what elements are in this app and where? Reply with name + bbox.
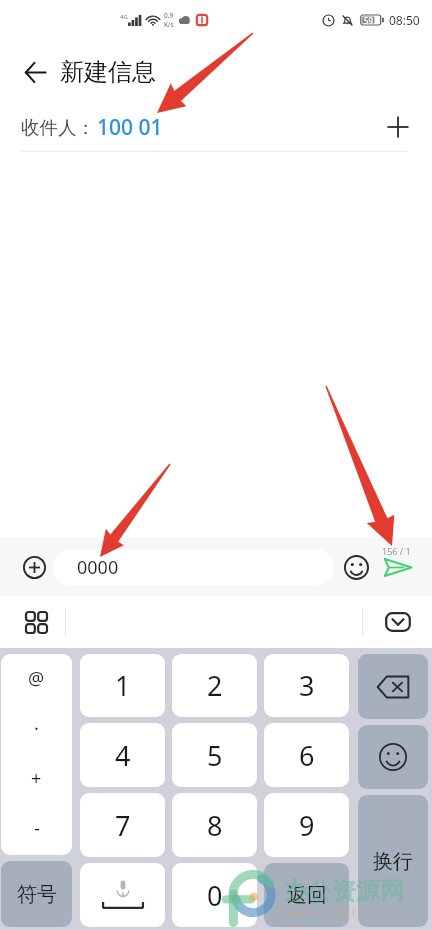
staticText: 2 bbox=[207, 667, 223, 704]
staticText: 6 bbox=[299, 737, 315, 774]
button[interactable]: Emoji keyboard bbox=[358, 725, 428, 789]
staticText: 4G bbox=[120, 13, 128, 21]
button[interactable]: Add recipient bbox=[378, 107, 418, 147]
staticText: 0000 bbox=[77, 555, 119, 580]
staticText: 换行 bbox=[373, 849, 413, 874]
staticText: K/s bbox=[164, 20, 174, 29]
button[interactable]: 3 bbox=[264, 654, 349, 717]
staticText: - bbox=[34, 816, 40, 841]
staticText: 8 bbox=[207, 807, 223, 844]
staticText: 9 bbox=[299, 807, 315, 844]
button[interactable]: Space bbox=[80, 863, 165, 927]
staticText: 4 bbox=[115, 737, 131, 774]
button[interactable]: Send bbox=[377, 546, 419, 588]
button[interactable]: 9 bbox=[264, 793, 349, 857]
staticText: 新建信息 bbox=[60, 57, 156, 87]
staticText: 符号 bbox=[17, 882, 57, 907]
staticText: 0.9 bbox=[164, 11, 174, 20]
button[interactable]: @ bbox=[1, 654, 72, 855]
button[interactable]: 1 bbox=[80, 654, 165, 717]
staticText: 156 / 1 bbox=[382, 545, 411, 557]
button[interactable]: 7 bbox=[80, 793, 165, 857]
staticText: + bbox=[31, 766, 42, 791]
button[interactable]: 0 bbox=[172, 863, 257, 927]
button[interactable]: 4 bbox=[80, 723, 165, 787]
button[interactable]: Emoji bbox=[336, 547, 376, 587]
button[interactable]: Add attachment bbox=[13, 546, 56, 589]
staticText: · bbox=[34, 716, 39, 741]
button[interactable]: Keyboard options bbox=[18, 604, 54, 640]
staticText: 59 bbox=[364, 15, 374, 26]
button[interactable]: Hide keyboard bbox=[380, 604, 416, 640]
button[interactable]: Backspace bbox=[358, 654, 428, 719]
staticText: 08:50 bbox=[389, 12, 420, 28]
button[interactable]: 返回 bbox=[264, 863, 349, 927]
button[interactable]: 换行 bbox=[358, 795, 428, 927]
staticText: 7 bbox=[115, 807, 131, 844]
staticText: @ bbox=[28, 666, 45, 691]
staticText: 3 bbox=[299, 667, 315, 704]
button[interactable]: 2 bbox=[172, 654, 257, 717]
button[interactable]: 6 bbox=[264, 723, 349, 787]
button[interactable]: 符号 bbox=[1, 861, 72, 927]
button[interactable]: 8 bbox=[172, 793, 257, 857]
button[interactable]: 0000 bbox=[53, 549, 334, 586]
staticText: 收件人： bbox=[21, 116, 95, 139]
staticText: 0 bbox=[207, 877, 223, 914]
staticText: 100 01 bbox=[97, 113, 163, 142]
button[interactable]: 5 bbox=[172, 723, 257, 787]
staticText: w w w . o f f i c e 2 6 . c o m bbox=[284, 907, 391, 919]
button[interactable]: Back bbox=[13, 50, 57, 94]
staticText: 1 bbox=[115, 667, 131, 704]
staticText: 5 bbox=[207, 737, 223, 774]
staticText: 返回 bbox=[287, 883, 327, 908]
staticText: 办公资源网 bbox=[284, 876, 404, 906]
